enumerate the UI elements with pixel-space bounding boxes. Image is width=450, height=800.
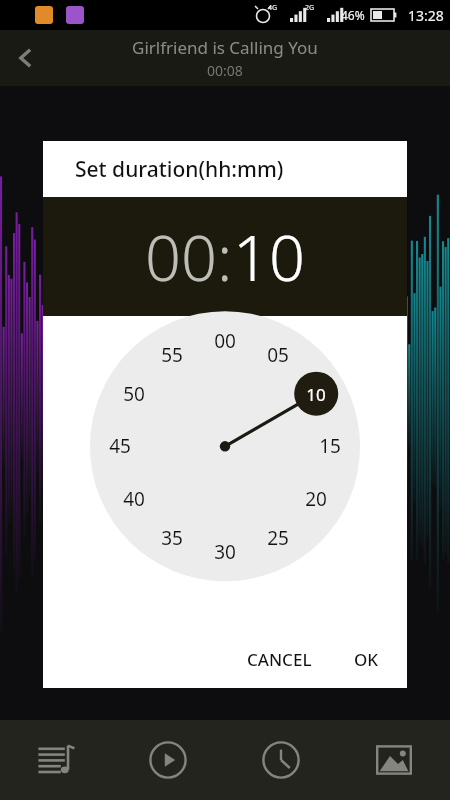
button[interactable]: 20 [296, 486, 336, 512]
button[interactable]: 40 [114, 486, 154, 512]
staticText: Set duration(hh:mm) [75, 155, 284, 184]
button[interactable]: 15 [310, 433, 350, 459]
button[interactable]: 55 [152, 342, 192, 368]
button[interactable]: Playlist [0, 720, 112, 800]
staticText: : [217, 214, 233, 300]
staticText: 05 [267, 342, 289, 368]
staticText: 00:08 [207, 61, 243, 80]
staticText: 50 [123, 381, 145, 407]
staticText: Girlfriend is Calling You [132, 36, 318, 59]
staticText: 20 [305, 486, 327, 512]
button[interactable]: 30 [205, 539, 245, 565]
button[interactable]: 45 [100, 433, 140, 459]
staticText: 2G [305, 3, 315, 13]
button[interactable]: 50 [114, 381, 154, 407]
staticText: 40 [123, 486, 145, 512]
button[interactable]: Image [337, 720, 450, 800]
staticText: 25 [267, 525, 289, 551]
button[interactable]: 00 [205, 328, 245, 354]
staticText: 46% [341, 7, 365, 23]
button[interactable]: Play [112, 720, 224, 800]
staticText: 45 [109, 433, 131, 459]
staticText: 10 [306, 383, 326, 406]
staticText: 35 [161, 525, 183, 551]
button[interactable]: 10 [233, 214, 305, 300]
button[interactable]: Back [0, 32, 52, 84]
staticText: 00 [214, 328, 236, 354]
staticText: 13:28 [408, 6, 444, 25]
staticText: 4G [268, 3, 278, 13]
button[interactable]: 25 [258, 525, 298, 551]
button[interactable]: CANCEL [233, 638, 326, 681]
staticText: OK [354, 648, 379, 671]
staticText: 30 [214, 539, 236, 565]
button[interactable]: Timer [224, 720, 337, 800]
button[interactable]: OK [340, 638, 393, 681]
button[interactable]: 35 [152, 525, 192, 551]
button[interactable]: 10 [296, 381, 336, 407]
button[interactable]: 00 [145, 214, 217, 300]
staticText: 15 [319, 433, 341, 459]
staticText: 55 [161, 342, 183, 368]
staticText: CANCEL [247, 648, 312, 671]
button[interactable]: 05 [258, 342, 298, 368]
